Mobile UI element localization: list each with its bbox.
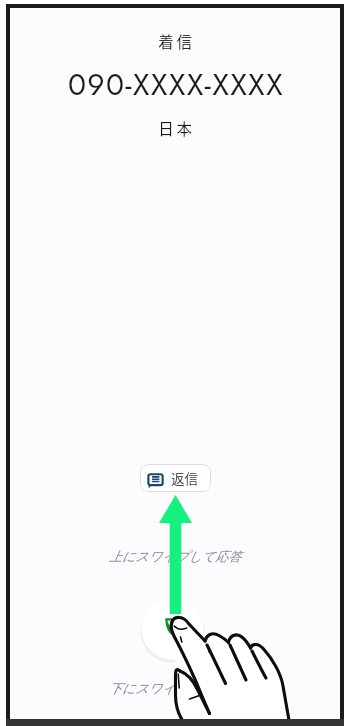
staticText: 日本 [158,117,195,139]
staticText: 返信 [171,468,198,488]
button[interactable]: 返信 [140,464,211,492]
staticText: 090-XXXX-XXXX [68,63,284,106]
staticText: 下にスワイプ [109,680,189,696]
staticText: 着信 [158,30,195,52]
staticText: 上にスワイプして応答 [109,548,242,564]
